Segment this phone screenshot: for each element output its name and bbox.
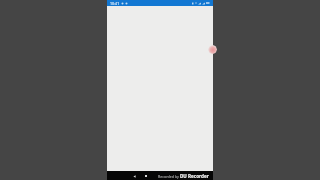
- button[interactable]: Back: [131, 173, 137, 179]
- button[interactable]: Home: [143, 173, 149, 179]
- staticText: DU Recorder: [180, 173, 209, 179]
- staticText: Recorded by: [158, 174, 179, 179]
- button[interactable]: Action: [208, 45, 217, 54]
- staticText: 10:41: [110, 1, 120, 6]
